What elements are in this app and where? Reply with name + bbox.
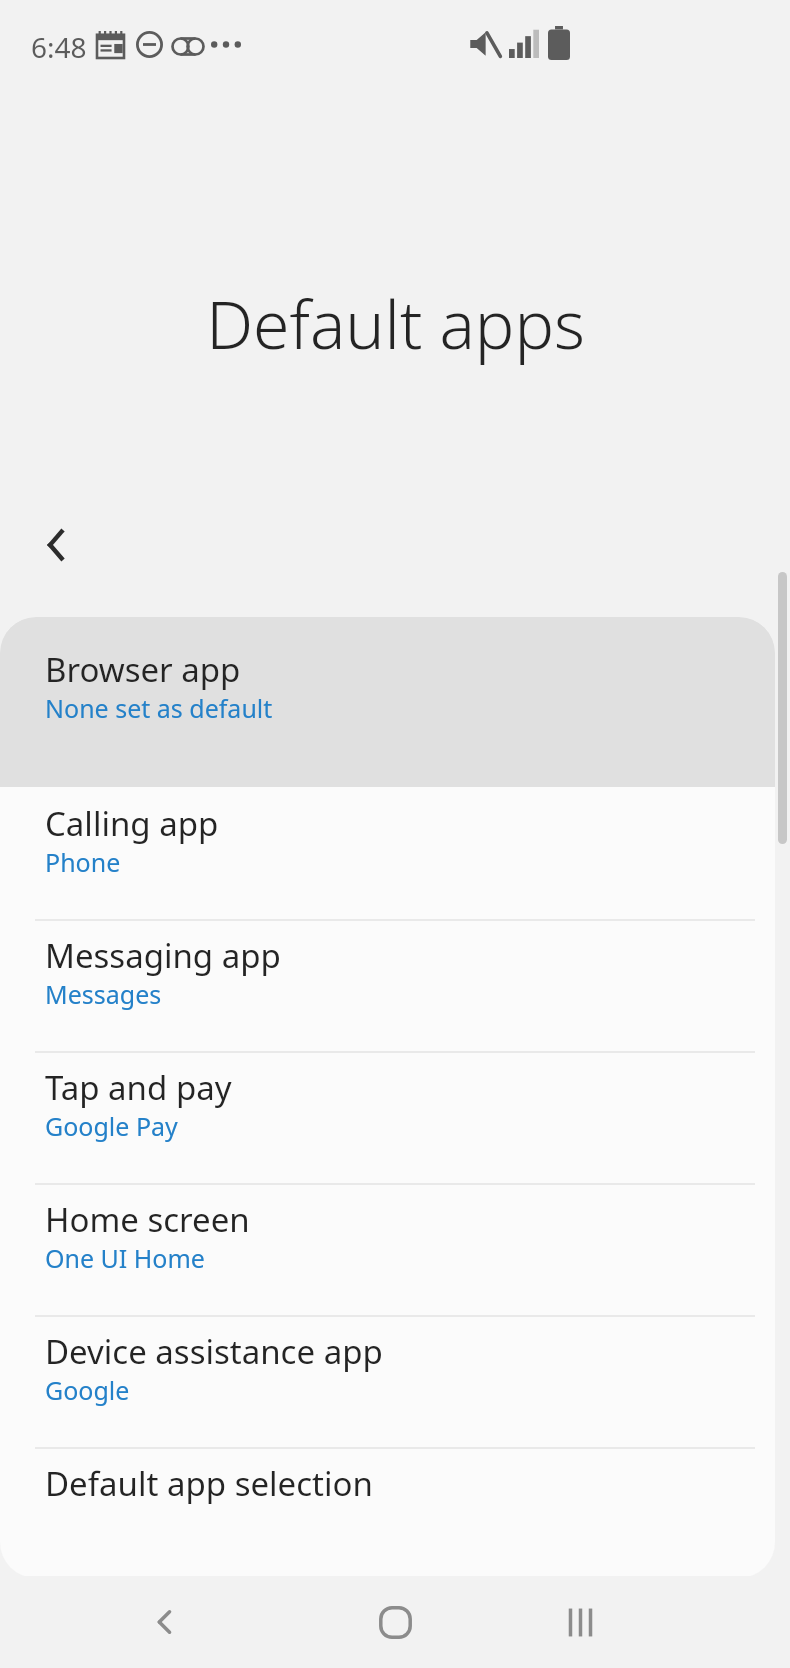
staticText: Phone: [45, 845, 121, 879]
staticText: 6:48: [31, 28, 87, 66]
staticText: Default apps: [206, 278, 585, 368]
staticText: Browser app: [45, 647, 241, 692]
staticText: Google: [45, 1373, 130, 1407]
staticText: Google Pay: [45, 1109, 178, 1143]
staticText: One UI Home: [45, 1241, 205, 1275]
staticText: Home screen: [45, 1197, 250, 1242]
staticText: None set as default: [45, 691, 273, 725]
button[interactable]: Recent apps: [534, 1576, 626, 1668]
button[interactable]: Default app selection: [0, 1447, 775, 1578]
button[interactable]: Back: [119, 1576, 211, 1668]
staticText: Tap and pay: [45, 1065, 232, 1110]
staticText: Calling app: [45, 801, 219, 846]
button[interactable]: Home screen: [0, 1183, 775, 1315]
staticText: Messages: [45, 977, 162, 1011]
button[interactable]: Messaging app: [0, 919, 775, 1051]
button[interactable]: Tap and pay: [0, 1051, 775, 1183]
staticText: Device assistance app: [45, 1329, 383, 1374]
button[interactable]: Browser app: [0, 617, 775, 787]
staticText: Messaging app: [45, 933, 281, 978]
button[interactable]: Calling app: [0, 787, 775, 919]
button[interactable]: Home: [349, 1576, 441, 1668]
button[interactable]: Device assistance app: [0, 1315, 775, 1447]
staticText: Default app selection: [45, 1461, 373, 1506]
button[interactable]: Navigate up: [14, 502, 100, 588]
